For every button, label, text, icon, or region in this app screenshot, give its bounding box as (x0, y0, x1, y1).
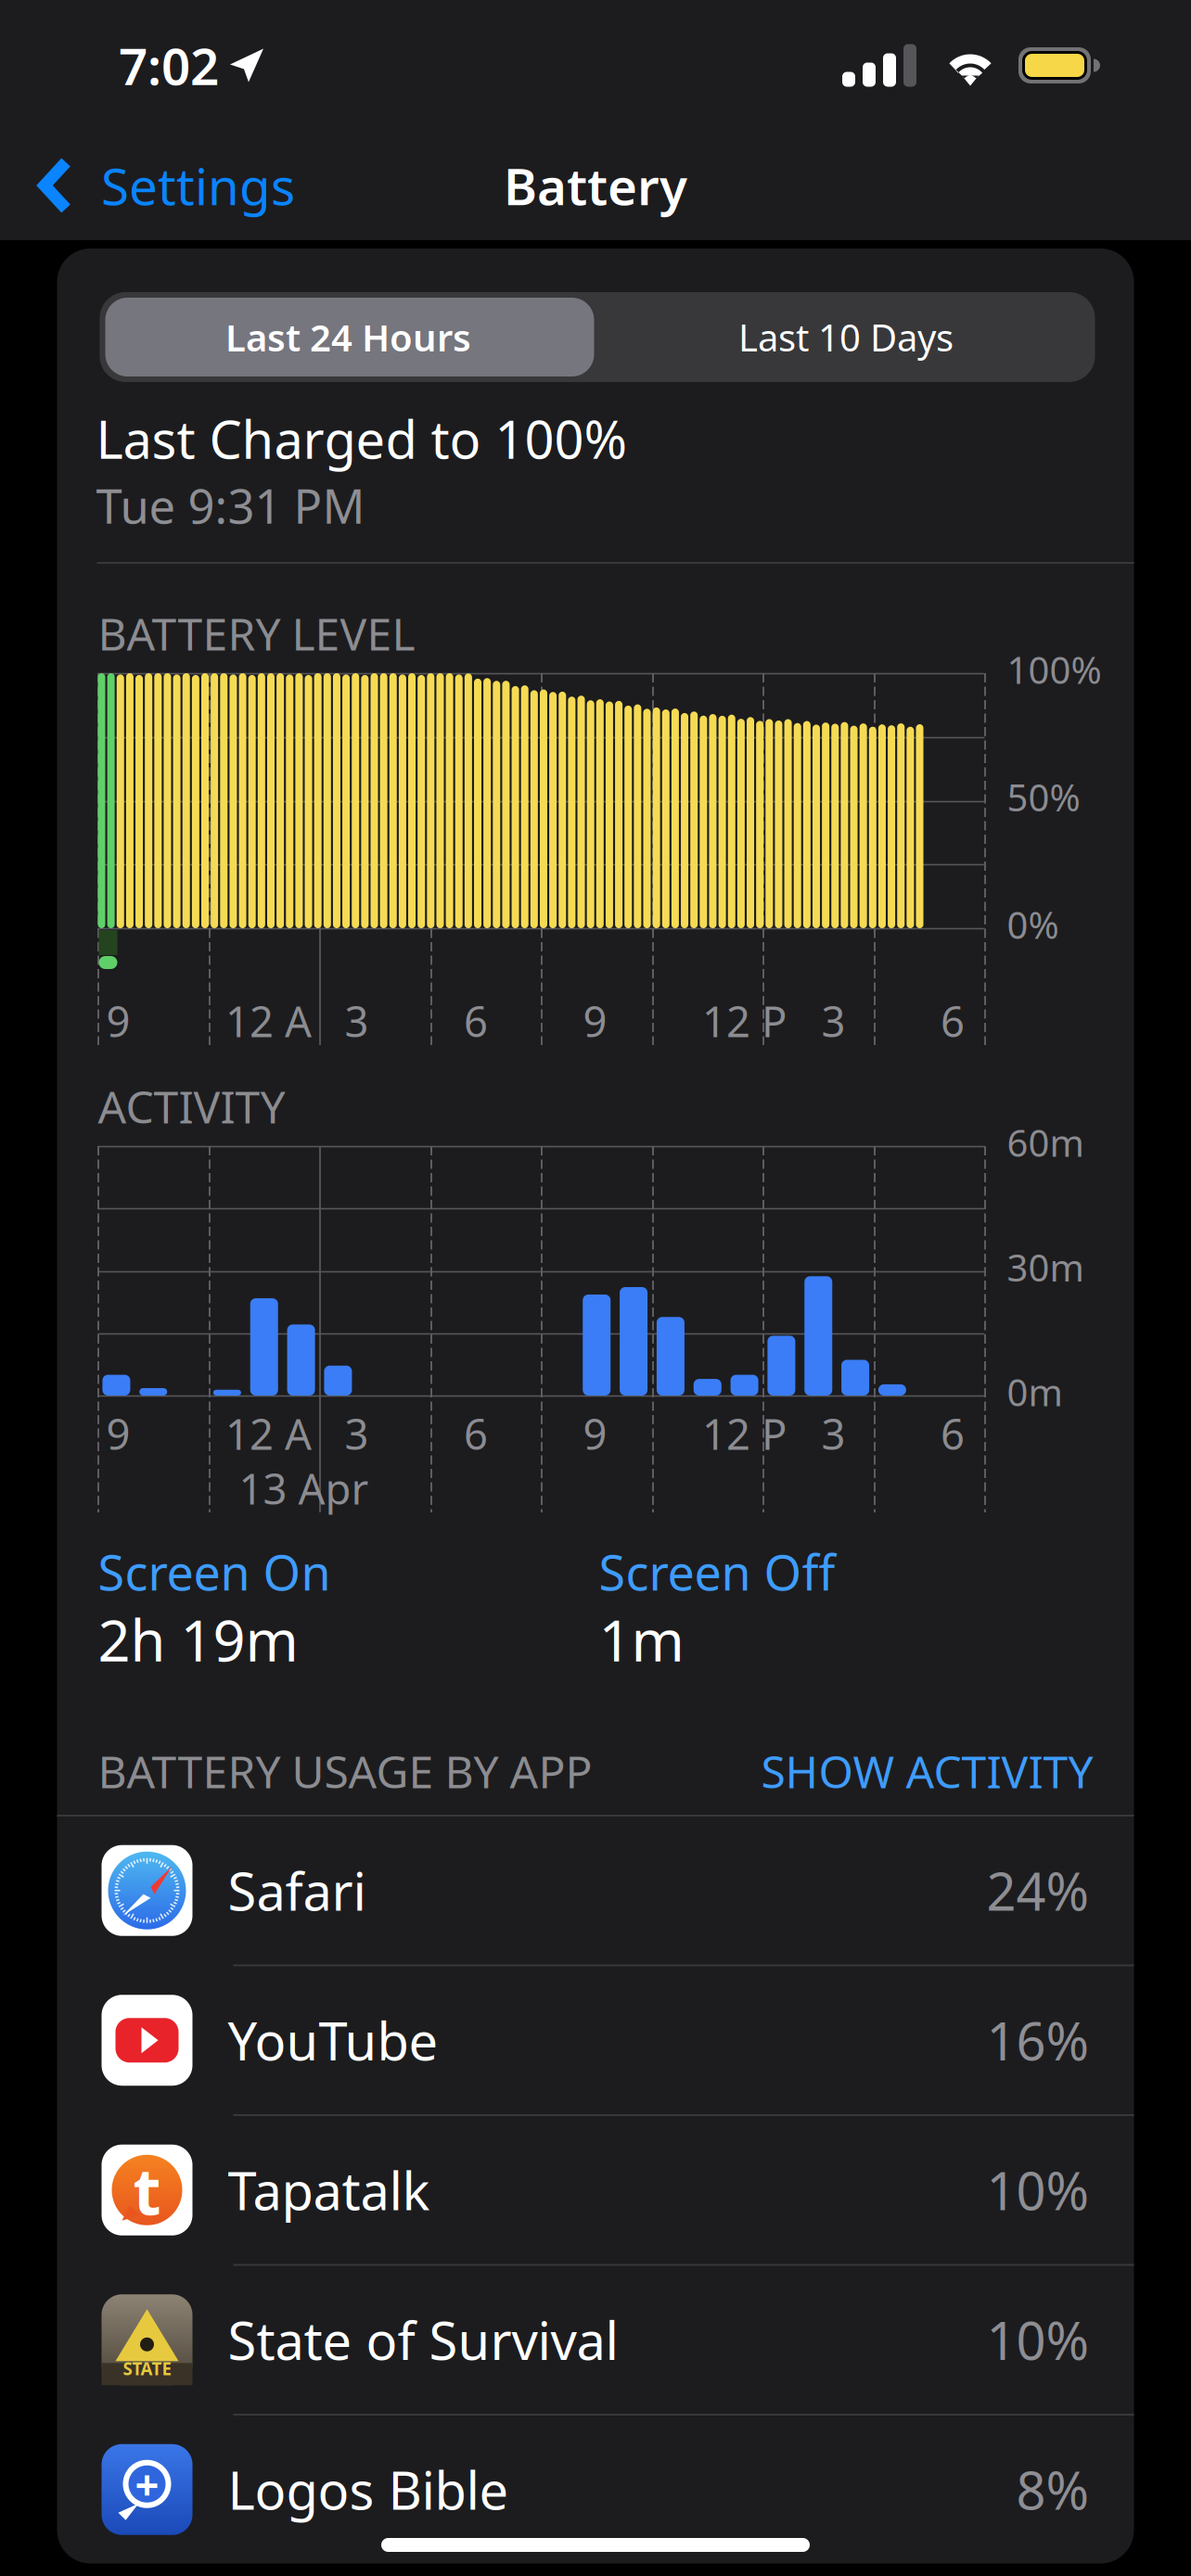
staticText: Settings (101, 152, 295, 219)
staticText: 13 Apr (239, 1460, 369, 1516)
staticText: 12 P (702, 993, 787, 1049)
staticText: 3 (345, 1406, 369, 1461)
staticText: Tue 9:31 PM (96, 474, 365, 537)
staticText: ACTIVITY (98, 1077, 285, 1136)
staticText: Last 10 Days (738, 312, 954, 362)
button[interactable]: Last 24 Hours (100, 292, 597, 382)
button[interactable]: Settings (0, 131, 317, 240)
button[interactable]: Safari (57, 1817, 1134, 1964)
button[interactable]: t (57, 2116, 1134, 2264)
staticText: 6 (941, 993, 965, 1049)
staticText: 6 (941, 1406, 965, 1461)
staticText: + (135, 2456, 159, 2512)
staticText: Battery (504, 152, 687, 219)
staticText: YouTube (228, 2006, 438, 2075)
staticText: Last Charged to 100% (96, 404, 628, 473)
staticText: 12 A (225, 993, 312, 1049)
staticText: 3 (821, 993, 845, 1049)
staticText: BATTERY USAGE BY APP (98, 1742, 592, 1801)
staticText: Screen Off (599, 1540, 835, 1604)
staticText: Tapatalk (228, 2156, 430, 2225)
staticText: 1m (599, 1602, 684, 1677)
staticText: t (133, 2147, 161, 2233)
staticText: 16% (986, 2006, 1089, 2075)
staticText: Last 24 Hours (225, 312, 471, 362)
staticText: SHOW ACTIVITY (761, 1742, 1093, 1801)
staticText: 9 (106, 993, 130, 1049)
button[interactable]: SHOW ACTIVITY (761, 1742, 1093, 1801)
staticText: 9 (583, 993, 607, 1049)
button[interactable]: STATE (57, 2266, 1134, 2414)
staticText: 0m (1007, 1367, 1063, 1416)
staticText: 9 (583, 1406, 607, 1461)
staticText: 6 (464, 993, 488, 1049)
staticText: 30m (1007, 1242, 1084, 1292)
staticText: 12 P (702, 1406, 787, 1461)
staticText: 24% (986, 1856, 1089, 1925)
staticText: 7:02 (119, 32, 219, 99)
staticText: 3 (345, 993, 369, 1049)
staticText: Safari (228, 1856, 366, 1925)
staticText: 6 (464, 1406, 488, 1461)
staticText: State of Survival (228, 2305, 618, 2374)
staticText: Logos Bible (228, 2455, 509, 2524)
button[interactable]: Last 10 Days (597, 292, 1095, 382)
staticText: 9 (106, 1406, 130, 1461)
staticText: BATTERY LEVEL (98, 604, 415, 663)
staticText: 60m (1007, 1118, 1084, 1167)
staticText: 10% (986, 2305, 1089, 2374)
button[interactable]: YouTube (57, 1966, 1134, 2114)
staticText: Screen On (98, 1540, 331, 1604)
staticText: 3 (821, 1406, 845, 1461)
staticText: 8% (1016, 2455, 1089, 2524)
staticText: 100% (1007, 645, 1101, 694)
staticText: 50% (1007, 772, 1080, 822)
staticText: 2h 19m (98, 1602, 298, 1677)
staticText: 0% (1007, 900, 1059, 949)
staticText: 12 A (225, 1406, 312, 1461)
button[interactable]: + (57, 2416, 1134, 2563)
staticText: STATE (123, 2357, 171, 2380)
staticText: 10% (986, 2156, 1089, 2225)
